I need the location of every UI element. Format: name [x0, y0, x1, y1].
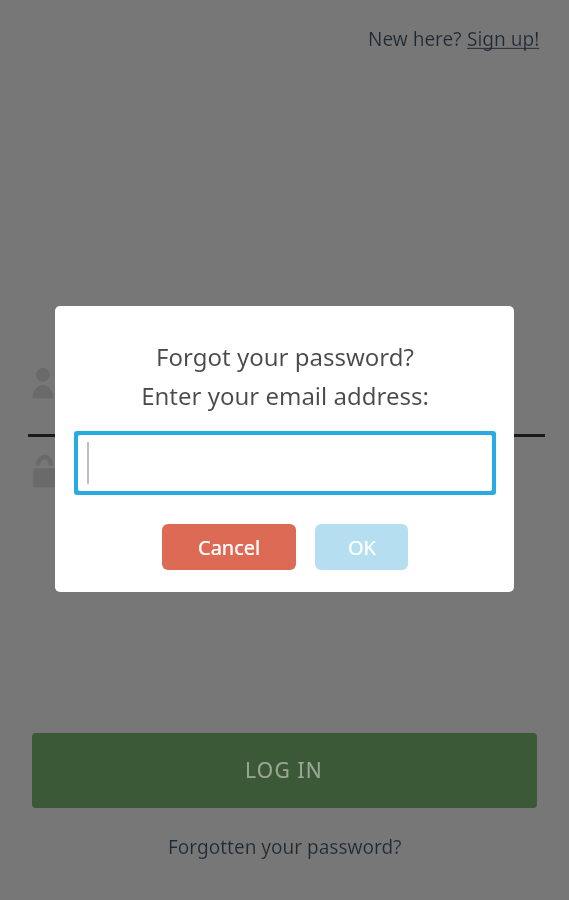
- staticText: New here?: [368, 26, 467, 52]
- button[interactable]: Forgotten your password?: [162, 832, 408, 862]
- staticText: OK: [348, 534, 376, 561]
- button[interactable]: [74, 431, 496, 495]
- button[interactable]: Cancel: [162, 524, 296, 570]
- staticText: Sign up!: [467, 26, 540, 52]
- staticText: LOG IN: [245, 756, 324, 785]
- staticText: Forgotten your password?: [168, 834, 402, 860]
- staticText: Enter your email address:: [141, 379, 429, 412]
- button[interactable]: OK: [315, 524, 408, 570]
- staticText: Forgot your password?: [156, 340, 414, 373]
- staticText: Cancel: [198, 534, 261, 561]
- button[interactable]: LOG IN: [32, 733, 537, 808]
- button[interactable]: New here?: [368, 26, 540, 52]
